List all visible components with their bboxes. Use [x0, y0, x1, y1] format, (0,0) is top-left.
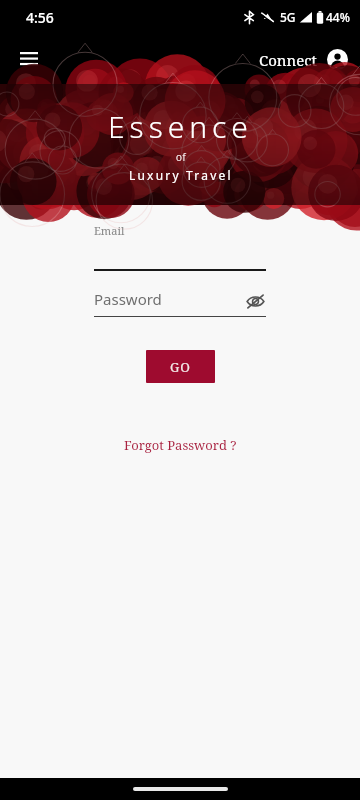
button[interactable]: Password [94, 291, 266, 317]
staticText: Forgot Password ? [124, 436, 237, 454]
staticText: Email [94, 223, 125, 238]
staticText: of [176, 150, 186, 164]
button[interactable]: Connect [259, 49, 348, 70]
staticText: GO [170, 358, 191, 376]
button[interactable]: GO [146, 350, 215, 383]
staticText: Luxury Travel [129, 167, 233, 183]
button[interactable]: Open navigation menu [10, 40, 48, 78]
staticText: 44% [326, 9, 350, 25]
staticText: Connect [259, 50, 317, 70]
staticText: Password [94, 289, 162, 309]
staticText: Essence [108, 106, 253, 147]
button[interactable]: Email [94, 223, 266, 271]
button[interactable]: Forgot Password ? [124, 436, 237, 454]
staticText: 4:56 [26, 8, 54, 27]
staticText: 5G [280, 9, 296, 25]
other: Account [327, 49, 348, 70]
button[interactable]: Show password [244, 290, 266, 312]
